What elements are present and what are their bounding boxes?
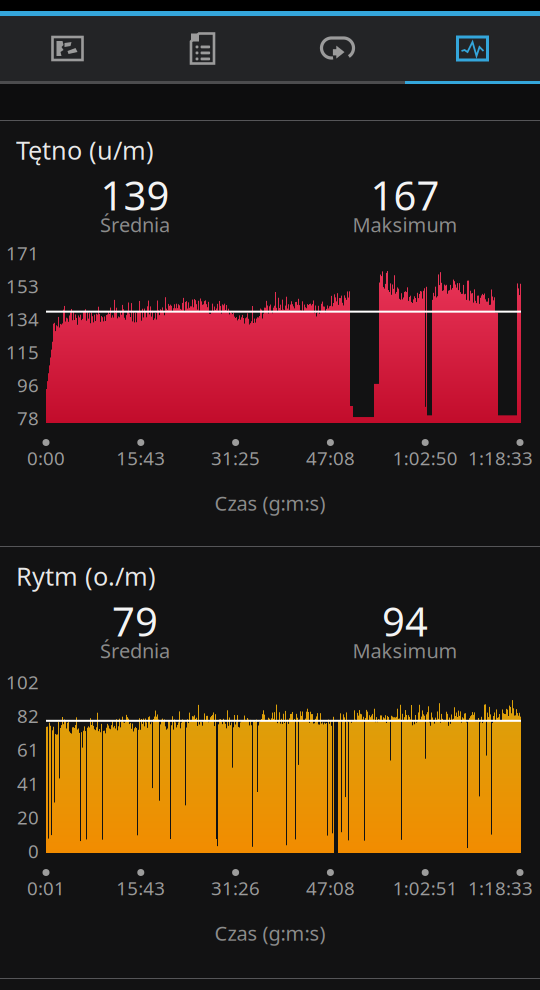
staticText: 47:08 [306,446,355,470]
staticText: Rytm (o./m) [16,559,156,593]
staticText: 102 [6,670,39,694]
staticText: 94 [382,594,428,647]
button[interactable]: Mapa [0,16,135,81]
staticText: 0 [28,839,39,863]
staticText: 0:00 [27,446,65,470]
staticText: 139 [100,168,169,221]
staticText: 1:02:50 [393,446,458,470]
button[interactable]: Podsumowanie [135,16,270,81]
staticText: 96 [17,373,39,397]
staticText: 31:25 [211,446,260,470]
staticText: Czas (g:m:s) [214,920,325,946]
staticText: 134 [6,307,39,331]
staticText: 15:43 [116,446,165,470]
staticText: 167 [370,168,439,221]
staticText: Średnia [100,637,170,664]
staticText: 47:08 [306,876,355,900]
staticText: 0:01 [27,876,65,900]
staticText: 79 [112,594,158,647]
staticText: Maksimum [352,211,457,238]
staticText: 15:43 [116,876,165,900]
staticText: 1:02:51 [393,876,458,900]
staticText: 31:26 [211,876,260,900]
staticText: 115 [6,340,39,364]
staticText: 41 [17,771,39,796]
staticText: 171 [6,241,39,265]
staticText: Tętno (u/m) [16,133,154,167]
staticText: 1:18:33 [468,446,533,470]
staticText: Czas (g:m:s) [214,490,325,516]
button[interactable]: Wykresy [405,16,540,81]
staticText: 153 [6,274,39,298]
staticText: 78 [17,406,39,430]
staticText: Maksimum [352,637,457,664]
staticText: 20 [17,805,39,830]
staticText: 61 [17,737,39,762]
staticText: 82 [17,703,39,728]
staticText: Średnia [100,211,170,238]
button[interactable]: Okrążenia [270,16,405,81]
staticText: 1:18:33 [468,876,533,900]
